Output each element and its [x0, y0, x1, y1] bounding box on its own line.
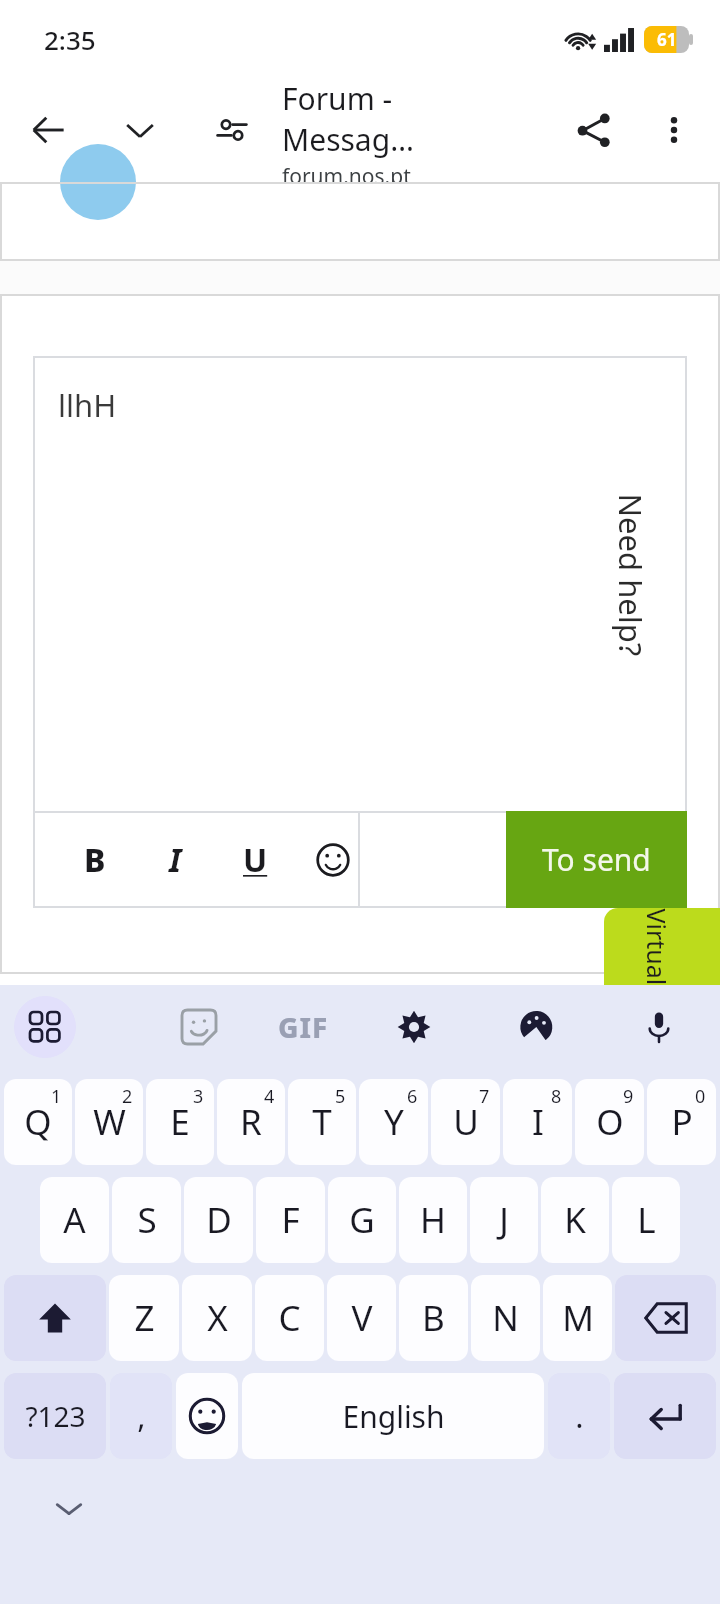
staticText: H: [420, 1196, 446, 1244]
staticText: F: [281, 1196, 300, 1244]
button[interactable]: Back: [16, 98, 80, 162]
button[interactable]: S: [112, 1177, 181, 1263]
button[interactable]: ,: [110, 1373, 172, 1459]
button[interactable]: X: [182, 1275, 252, 1361]
button[interactable]: Site settings: [202, 100, 262, 160]
staticText: A: [63, 1196, 86, 1244]
staticText: Need help?: [609, 493, 651, 656]
button[interactable]: Voice input: [628, 996, 690, 1058]
staticText: 3: [193, 1084, 204, 1109]
button[interactable]: K: [541, 1177, 609, 1263]
staticText: E: [170, 1098, 190, 1146]
button[interactable]: Expand: [108, 98, 172, 162]
button[interactable]: B: [399, 1275, 468, 1361]
staticText: 61: [657, 28, 677, 51]
staticText: L: [637, 1196, 656, 1244]
button[interactable]: D: [184, 1177, 253, 1263]
staticText: Y: [384, 1098, 404, 1146]
button[interactable]: Share: [562, 98, 626, 162]
staticText: Z: [134, 1294, 155, 1342]
button[interactable]: E: [146, 1079, 214, 1165]
button[interactable]: Keyboard settings: [383, 996, 445, 1058]
staticText: S: [137, 1196, 157, 1244]
button[interactable]: T: [288, 1079, 356, 1165]
button[interactable]: U: [431, 1079, 500, 1165]
button[interactable]: M: [543, 1275, 612, 1361]
staticText: 7: [479, 1084, 490, 1109]
staticText: R: [240, 1098, 262, 1146]
staticText: ,: [137, 1395, 146, 1437]
staticText: I: [169, 838, 182, 882]
staticText: llhH: [58, 384, 117, 426]
button[interactable]: C: [255, 1275, 324, 1361]
button[interactable]: Theme: [506, 996, 568, 1058]
button[interactable]: Stickers: [168, 996, 230, 1058]
staticText: C: [278, 1294, 301, 1342]
staticText: B: [422, 1294, 445, 1342]
button[interactable]: N: [471, 1275, 540, 1361]
button[interactable]: W: [75, 1079, 143, 1165]
button[interactable]: R: [217, 1079, 285, 1165]
button[interactable]: G: [328, 1177, 396, 1263]
staticText: B: [84, 838, 106, 882]
staticText: O: [596, 1098, 624, 1146]
staticText: 9: [623, 1084, 634, 1109]
staticText: forum.nos.pt: [282, 162, 411, 182]
button[interactable]: Enter: [614, 1373, 716, 1459]
staticText: U: [453, 1098, 479, 1146]
staticText: 2:35: [44, 22, 96, 57]
button[interactable]: GIF: [256, 996, 350, 1058]
staticText: GIF: [278, 1008, 329, 1046]
staticText: K: [564, 1196, 586, 1244]
button[interactable]: Shift: [4, 1275, 106, 1361]
staticText: .: [575, 1395, 584, 1437]
button[interactable]: F: [256, 1177, 325, 1263]
button[interactable]: .: [548, 1373, 610, 1459]
button[interactable]: P: [647, 1079, 716, 1165]
button[interactable]: English: [242, 1373, 544, 1459]
staticText: W: [93, 1098, 126, 1146]
button[interactable]: Y: [359, 1079, 428, 1165]
button[interactable]: Q: [4, 1079, 72, 1165]
button[interactable]: llhH: [33, 356, 687, 811]
staticText: G: [349, 1196, 375, 1244]
staticText: English: [342, 1396, 445, 1437]
staticText: V: [351, 1294, 373, 1342]
button[interactable]: Virtual: [604, 908, 720, 986]
staticText: P: [671, 1098, 693, 1146]
staticText: U: [243, 838, 268, 882]
button[interactable]: To send: [506, 811, 687, 908]
button[interactable]: V: [327, 1275, 396, 1361]
button[interactable]: ?123: [4, 1373, 106, 1459]
button[interactable]: I: [503, 1079, 572, 1165]
button[interactable]: B: [69, 834, 121, 886]
button[interactable]: Emoji: [176, 1373, 238, 1459]
staticText: Forum - Messag…: [282, 78, 490, 160]
staticText: 4: [264, 1084, 275, 1109]
button[interactable]: Keyboard modes: [14, 996, 76, 1058]
button[interactable]: More options: [644, 100, 704, 160]
button[interactable]: Hide keyboard: [40, 1479, 98, 1537]
staticText: J: [499, 1196, 509, 1244]
staticText: T: [312, 1098, 332, 1146]
button[interactable]: Insert emoji: [307, 834, 359, 886]
button[interactable]: O: [575, 1079, 644, 1165]
button[interactable]: Backspace: [615, 1275, 716, 1361]
staticText: D: [206, 1196, 232, 1244]
staticText: 0: [695, 1084, 706, 1109]
button[interactable]: U: [229, 834, 281, 886]
button[interactable]: A: [40, 1177, 109, 1263]
staticText: 2: [122, 1084, 133, 1109]
staticText: X: [207, 1294, 228, 1342]
button[interactable]: Forum - Messag…: [282, 78, 490, 182]
button[interactable]: J: [470, 1177, 538, 1263]
staticText: Virtual: [639, 908, 673, 985]
staticText: N: [492, 1294, 519, 1342]
staticText: M: [562, 1294, 594, 1342]
staticText: 8: [551, 1084, 562, 1109]
button[interactable]: L: [612, 1177, 680, 1263]
staticText: 1: [51, 1084, 62, 1109]
button[interactable]: Z: [109, 1275, 179, 1361]
button[interactable]: I: [149, 834, 201, 886]
button[interactable]: H: [399, 1177, 467, 1263]
